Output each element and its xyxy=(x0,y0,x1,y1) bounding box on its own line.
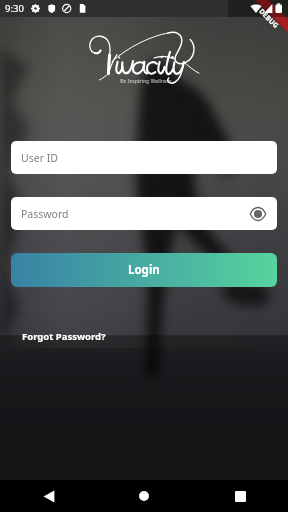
staticText: Password xyxy=(21,207,69,221)
staticText: Login xyxy=(128,262,160,278)
button[interactable]: Login xyxy=(11,253,277,287)
staticText: Forgot Password? xyxy=(22,330,106,343)
staticText: 9:30 xyxy=(5,2,24,15)
staticText: DEBUG xyxy=(257,7,281,30)
button[interactable]: Recents xyxy=(192,480,288,512)
button[interactable]: Show password xyxy=(248,204,268,224)
button[interactable]: User ID xyxy=(11,141,277,174)
button[interactable]: Back xyxy=(0,480,96,512)
staticText: Be Inspiring Wellness xyxy=(120,78,172,84)
staticText: User ID xyxy=(21,151,58,165)
button[interactable]: Home xyxy=(96,480,192,512)
button[interactable]: Password xyxy=(11,197,277,230)
button[interactable]: Forgot Password? xyxy=(17,326,111,347)
